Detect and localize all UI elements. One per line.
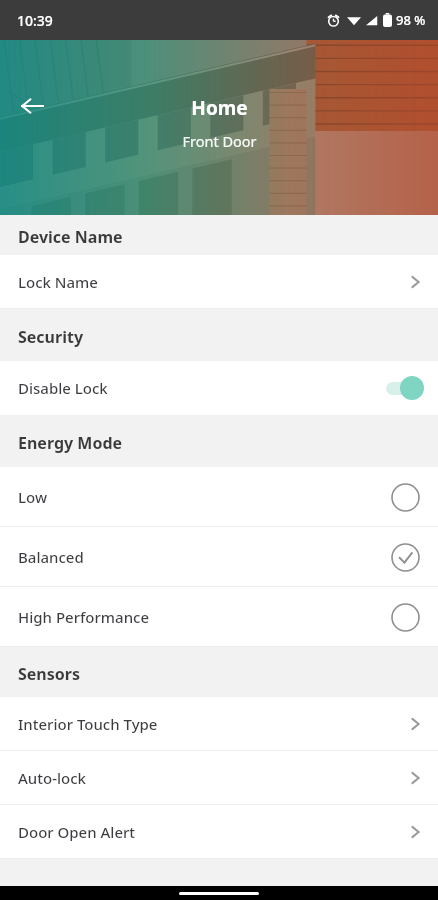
button[interactable]: Door Open Alert (0, 805, 438, 859)
staticText: Door Open Alert (18, 822, 136, 842)
staticText: Home (191, 95, 248, 121)
button[interactable]: Disable Lock (0, 361, 438, 415)
staticText: 98 % (396, 11, 426, 29)
staticText: Disable Lock (18, 378, 108, 398)
staticText: Auto-lock (18, 768, 86, 788)
staticText: Lock Name (18, 272, 98, 292)
button[interactable]: Interior Touch Type (0, 697, 438, 751)
staticText: Device Name (18, 226, 123, 248)
button[interactable]: Back (10, 84, 54, 128)
button[interactable]: Low (0, 467, 438, 527)
staticText: Sensors (18, 663, 80, 685)
button[interactable]: Auto-lock (0, 751, 438, 805)
staticText: Front Door (182, 131, 257, 151)
staticText: Balanced (18, 547, 84, 567)
staticText: Energy Mode (18, 432, 123, 454)
staticText: 10:39 (17, 11, 53, 30)
button[interactable]: Balanced (0, 527, 438, 587)
staticText: Interior Touch Type (18, 714, 158, 734)
staticText: Security (18, 326, 84, 348)
button[interactable]: Lock Name (0, 255, 438, 309)
button[interactable]: High Performance (0, 587, 438, 647)
staticText: Low (18, 487, 47, 507)
staticText: High Performance (18, 607, 150, 627)
